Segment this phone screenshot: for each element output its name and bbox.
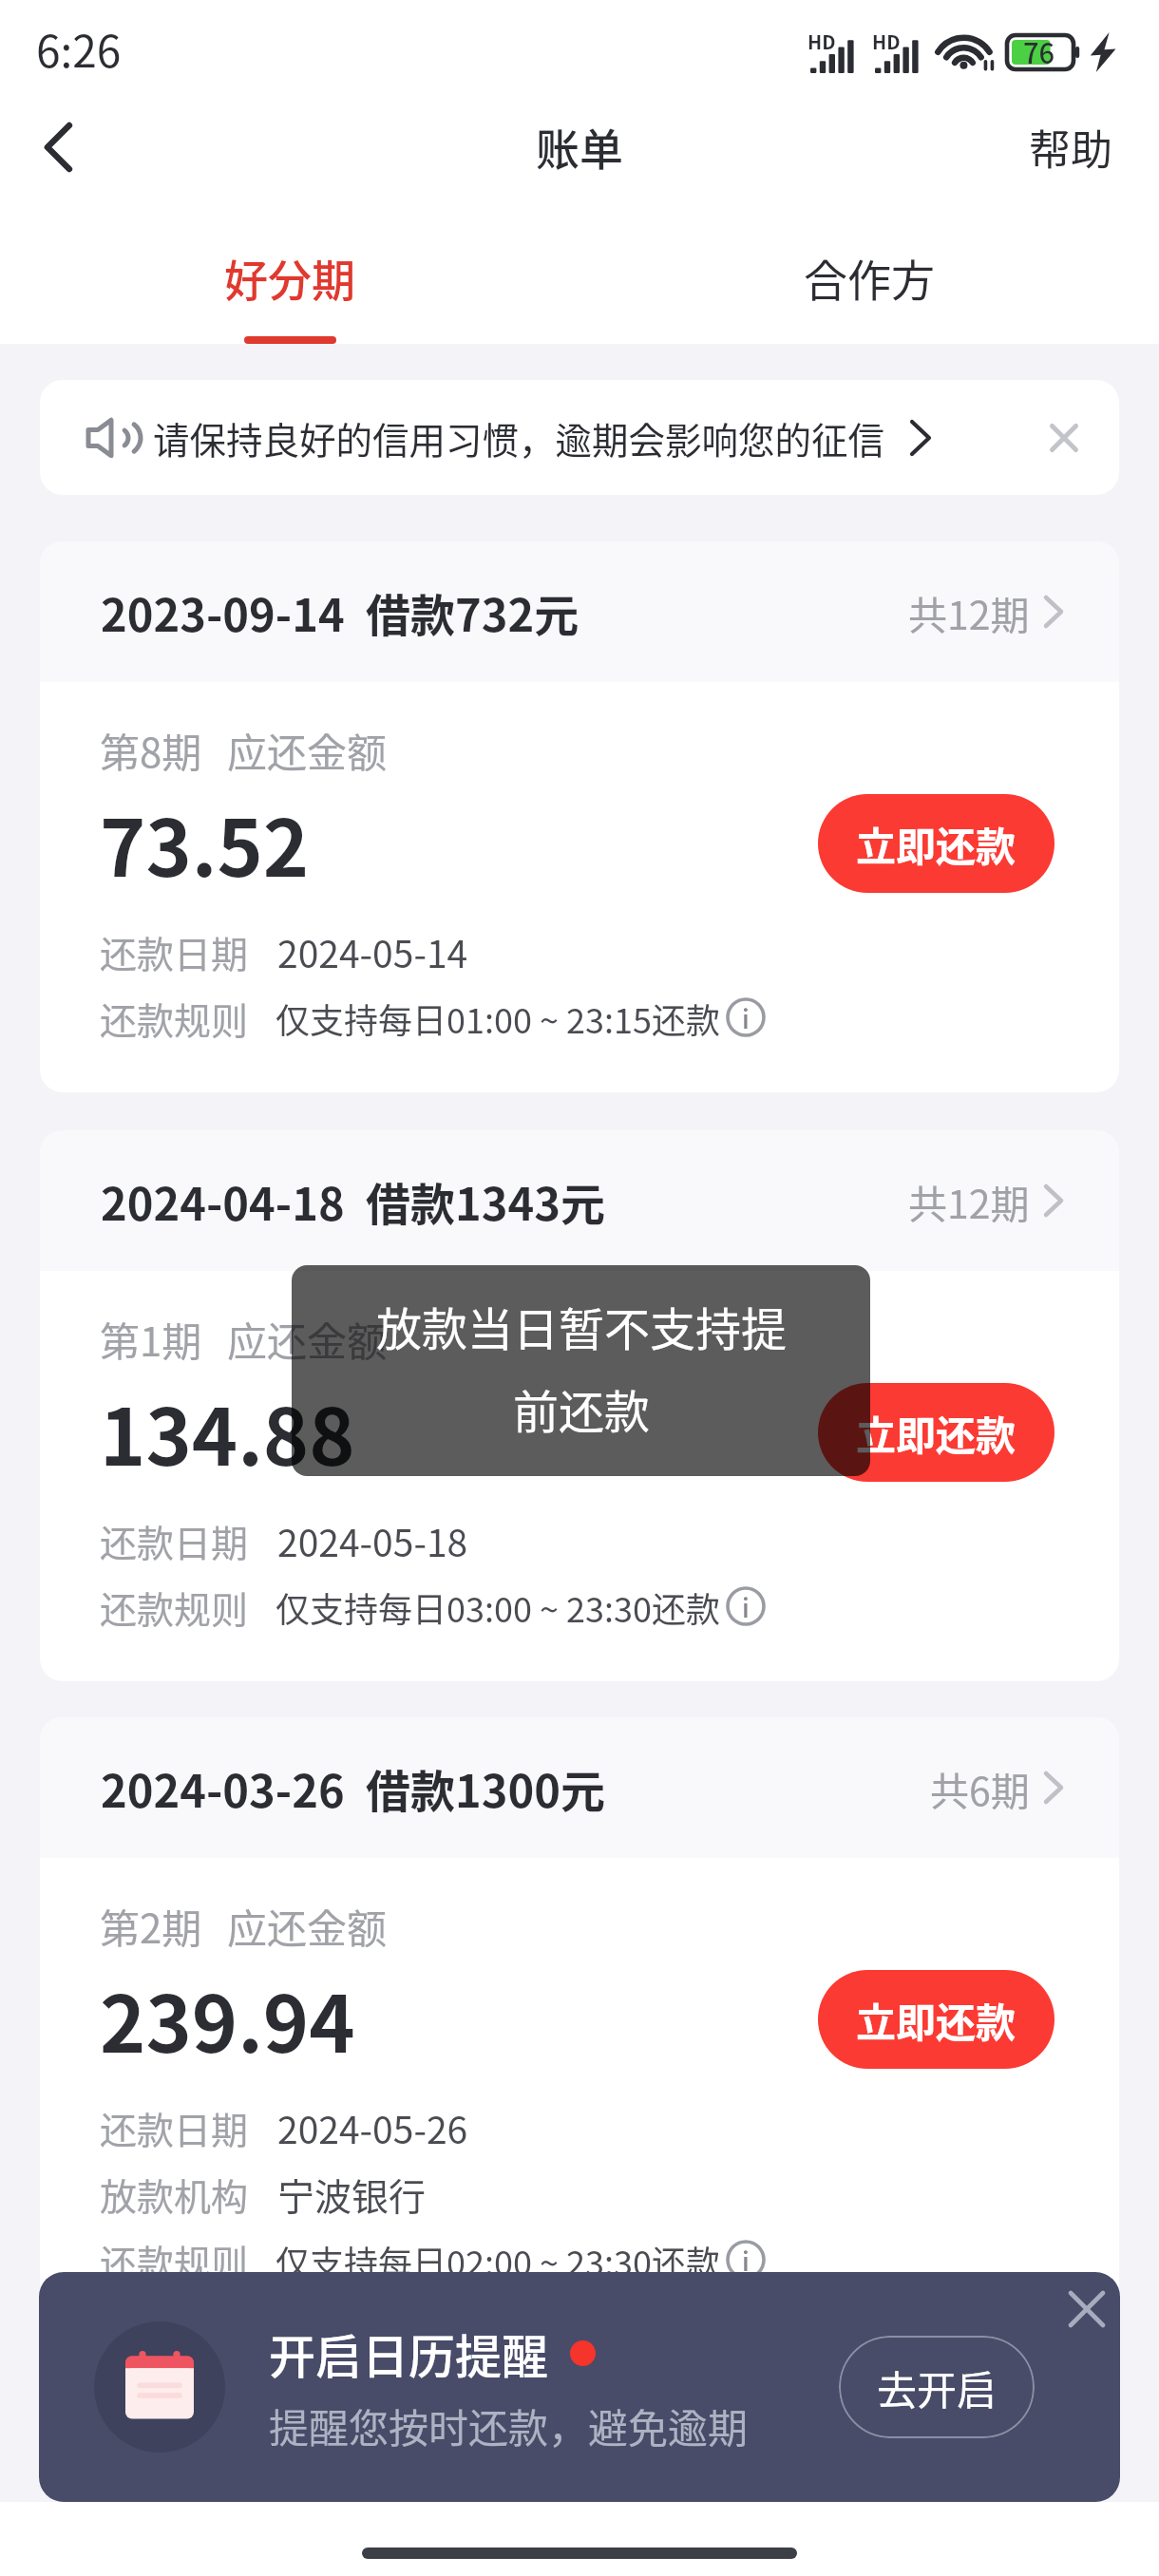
button[interactable]: Back <box>17 107 97 187</box>
button[interactable]: 立即还款 <box>818 1970 1054 2069</box>
staticText: 提醒您按时还款，避免逾期 <box>269 2396 749 2454</box>
staticText: 放款机构 <box>100 2168 249 2221</box>
button[interactable]: Rule info <box>727 2242 765 2280</box>
staticText: 73.52 <box>100 786 310 900</box>
button[interactable]: 好分期 <box>0 206 579 344</box>
staticText: 2023-09-14 <box>101 579 345 644</box>
button[interactable]: 去开启 <box>839 2336 1035 2438</box>
staticText: 立即还款 <box>856 815 1016 873</box>
staticText: 仅支持每日03:00 ~ 23:30还款 <box>275 1582 720 1632</box>
staticText: 2024-05-26 <box>277 2101 468 2154</box>
staticText: 好分期 <box>224 246 355 310</box>
staticText: 76 <box>1023 31 1055 71</box>
staticText: 仅支持每日01:00 ~ 23:15还款 <box>275 994 720 1043</box>
staticText: 第2期 <box>100 1897 202 1955</box>
staticText: 仅支持每日02:00 ~ 23:30还款 <box>275 2236 720 2285</box>
staticText: 请保持良好的信用习惯，逾期会影响您的征信 <box>153 411 885 464</box>
staticText: 2024-05-18 <box>277 1514 468 1567</box>
staticText: 第1期 <box>100 1310 202 1368</box>
staticText: 放款当日暂不支持提前还款 <box>369 1293 794 1442</box>
staticText: 去开启 <box>877 2358 997 2416</box>
button[interactable]: 2023-09-14 <box>40 541 1119 682</box>
staticText: 134.88 <box>100 1375 355 1488</box>
staticText: i <box>742 1588 750 1625</box>
button[interactable]: 帮助 <box>1000 98 1141 197</box>
staticText: 还款规则 <box>100 2234 249 2287</box>
staticText: 宁波银行 <box>277 2168 427 2221</box>
button[interactable]: 立即还款 <box>818 1383 1054 1482</box>
button[interactable]: 立即还款 <box>818 794 1054 893</box>
staticText: 应还金额 <box>227 721 388 779</box>
staticText: 还款规则 <box>100 1581 249 1634</box>
button[interactable]: 请保持良好的信用习惯，逾期会影响您的征信 <box>40 380 1119 495</box>
staticText: 2024-05-14 <box>277 925 468 978</box>
staticText: 共6期 <box>930 1760 1030 1816</box>
staticText: 合作方 <box>804 246 935 310</box>
staticText: 还款日期 <box>100 1514 249 1567</box>
staticText: 账单 <box>536 115 623 179</box>
staticText: 6:26 <box>36 17 122 81</box>
staticText: i <box>742 999 750 1036</box>
staticText: 第8期 <box>100 721 202 779</box>
staticText: 239.94 <box>100 1962 355 2075</box>
staticText: 2024-04-18 <box>101 1168 345 1233</box>
button[interactable]: 2024-03-26 <box>40 1717 1119 1858</box>
staticText: 借款1343元 <box>366 1168 605 1233</box>
staticText: 共12期 <box>908 1173 1030 1229</box>
staticText: 开启日历提醒 <box>269 2320 549 2387</box>
button[interactable]: 2024-04-18 <box>40 1130 1119 1271</box>
staticText: 立即还款 <box>856 1991 1016 2049</box>
button[interactable]: Close reminder <box>1070 2292 1104 2326</box>
staticText: 应还金额 <box>227 1897 388 1955</box>
button[interactable]: Rule info <box>727 1588 765 1626</box>
staticText: HD <box>872 28 901 55</box>
staticText: 帮助 <box>1029 117 1112 178</box>
staticText: i <box>742 2242 750 2279</box>
staticText: 2024-03-26 <box>101 1755 345 1820</box>
button[interactable]: 合作方 <box>579 206 1159 344</box>
staticText: HD <box>807 28 836 55</box>
button[interactable]: Rule info <box>727 999 765 1037</box>
staticText: 还款日期 <box>100 925 249 978</box>
staticText: 共12期 <box>908 584 1030 640</box>
staticText: 立即还款 <box>856 1404 1016 1462</box>
staticText: 借款1300元 <box>366 1755 605 1820</box>
staticText: 还款日期 <box>100 2101 249 2154</box>
button[interactable]: Close notice <box>1051 425 1077 451</box>
staticText: 借款732元 <box>366 579 579 644</box>
staticText: 还款规则 <box>100 992 249 1045</box>
staticText: 应还金额 <box>227 1310 388 1368</box>
